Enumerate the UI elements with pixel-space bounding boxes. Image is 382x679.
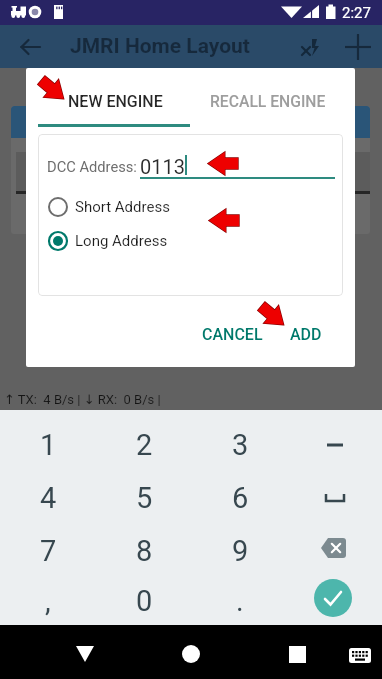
staticText: NEW ENGINE bbox=[68, 92, 163, 111]
button[interactable]: NEW ENGINE bbox=[26, 68, 191, 126]
staticText: 2:27 bbox=[342, 4, 371, 22]
button[interactable]: Short Address bbox=[38, 195, 343, 219]
staticText: 3 bbox=[232, 428, 249, 462]
button[interactable]: Add bbox=[334, 25, 382, 68]
staticText: CANCEL bbox=[202, 325, 263, 344]
staticText: RECALL ENGINE bbox=[210, 92, 326, 110]
staticText: 0113 bbox=[140, 155, 185, 178]
button[interactable]: 7 bbox=[0, 524, 96, 577]
staticText: 7 bbox=[40, 534, 57, 568]
button[interactable]: RECALL ENGINE bbox=[191, 68, 355, 126]
staticText: ADD bbox=[290, 325, 322, 344]
button[interactable]: 8 bbox=[96, 524, 192, 577]
staticText: ↑ TX: 4 B/s | ↓ RX: 0 B/s | bbox=[4, 392, 161, 407]
staticText: DCC Address: bbox=[47, 158, 137, 175]
staticText: 2 bbox=[136, 428, 153, 462]
button[interactable]: ADD bbox=[282, 316, 330, 352]
button[interactable]: Recent apps bbox=[259, 625, 335, 679]
staticText: 4 bbox=[40, 481, 57, 515]
button[interactable] bbox=[288, 418, 382, 471]
staticText: 5 bbox=[136, 481, 153, 515]
button[interactable] bbox=[288, 577, 382, 625]
staticText: , bbox=[45, 584, 51, 618]
staticText: 1 bbox=[40, 428, 57, 462]
button[interactable]: Home bbox=[153, 625, 229, 679]
button[interactable] bbox=[288, 524, 382, 577]
button[interactable]: Switch keyboard bbox=[337, 625, 382, 679]
button[interactable]: Power off track bbox=[290, 25, 334, 68]
staticText: 8 bbox=[136, 534, 153, 568]
button[interactable]: CANCEL bbox=[194, 316, 271, 352]
button[interactable]: 3 bbox=[192, 418, 288, 471]
staticText: 6 bbox=[232, 481, 249, 515]
staticText: 0 bbox=[136, 584, 153, 618]
button[interactable]: 9 bbox=[192, 524, 288, 577]
button[interactable]: 5 bbox=[96, 471, 192, 524]
button[interactable] bbox=[288, 471, 382, 524]
button[interactable]: Back bbox=[8, 25, 52, 68]
staticText: Long Address bbox=[75, 232, 168, 250]
button[interactable]: 6 bbox=[192, 471, 288, 524]
button[interactable]: 0 bbox=[96, 577, 192, 625]
button[interactable]: 4 bbox=[0, 471, 96, 524]
staticText: Short Address bbox=[75, 198, 170, 216]
button[interactable]: . bbox=[192, 577, 288, 625]
staticText: . bbox=[236, 584, 244, 618]
button[interactable]: 1 bbox=[0, 418, 96, 471]
button[interactable]: Hide keyboard bbox=[47, 625, 123, 679]
button[interactable]: 2 bbox=[96, 418, 192, 471]
button[interactable]: , bbox=[0, 577, 96, 625]
staticText: 9 bbox=[232, 534, 249, 568]
staticText: JMRI Home Layout bbox=[70, 34, 250, 59]
button[interactable]: Long Address bbox=[38, 229, 343, 253]
